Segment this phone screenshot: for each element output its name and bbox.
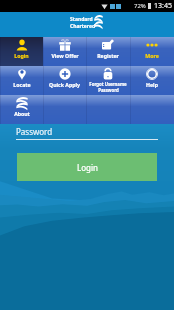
staticText: Forgot Username and (86, 81, 130, 87)
staticText: Chartered (70, 23, 96, 30)
button[interactable]: Help (130, 66, 174, 95)
button[interactable]: Login (0, 37, 43, 66)
button[interactable] (86, 95, 130, 124)
button[interactable]: About (0, 95, 43, 124)
button[interactable] (130, 95, 174, 124)
staticText: Password (16, 126, 53, 137)
staticText: 72% (134, 2, 146, 10)
button[interactable]: Register (86, 37, 130, 66)
staticText: Register (97, 52, 119, 59)
button[interactable]: Quick Apply (43, 66, 86, 95)
button[interactable]: More (130, 37, 174, 66)
staticText: Quick Apply (49, 81, 80, 88)
staticText: Help (146, 81, 158, 88)
button[interactable]: Locate (0, 66, 43, 95)
staticText: Password (98, 87, 119, 93)
button[interactable]: Forgot Username and (86, 66, 130, 95)
button[interactable]: View Offer (43, 37, 86, 66)
button[interactable] (43, 95, 86, 124)
button[interactable]: Login (17, 153, 157, 181)
staticText: Locate (13, 81, 31, 88)
staticText: More (145, 52, 159, 59)
staticText: Login (77, 162, 98, 173)
staticText: About (14, 110, 30, 117)
staticText: Standard (70, 16, 93, 23)
staticText: View Offer (51, 52, 79, 59)
staticText: 13:45 (154, 1, 172, 11)
staticText: Login (14, 52, 29, 59)
